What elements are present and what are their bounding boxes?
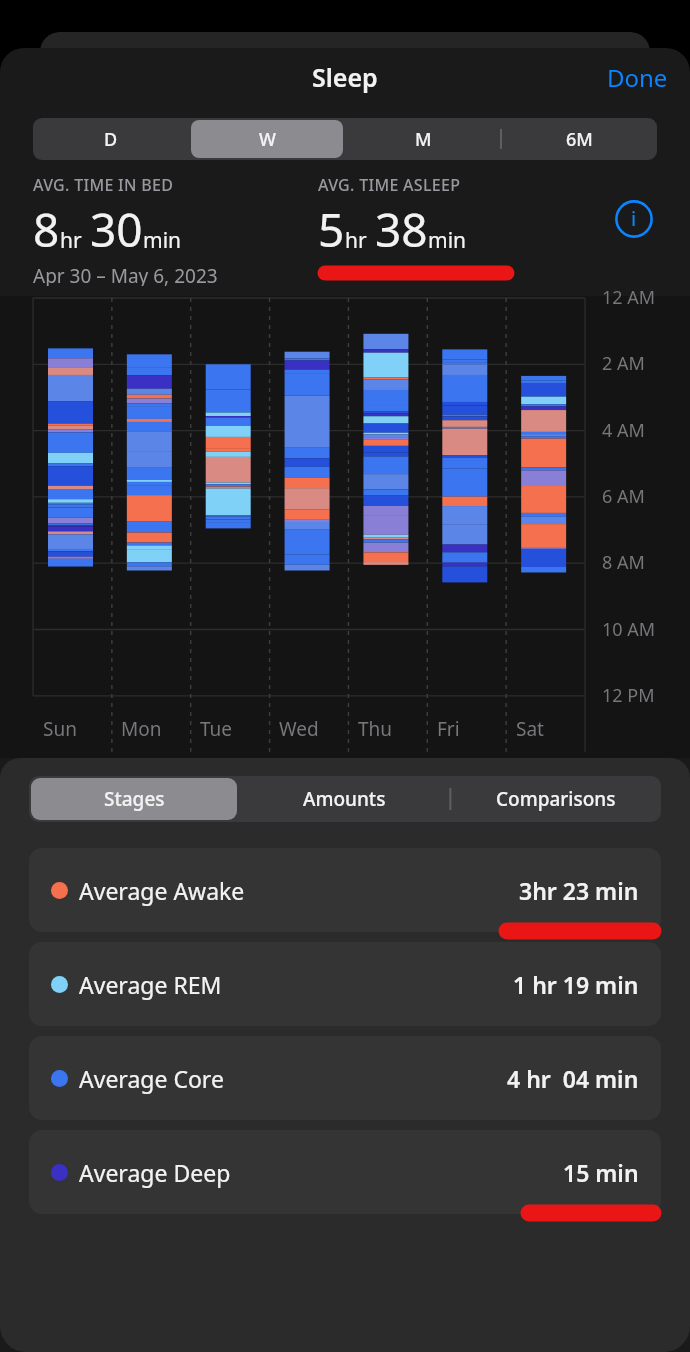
staticText: Stages (104, 786, 165, 812)
staticText: hr (60, 226, 82, 255)
staticText: Amounts (303, 786, 386, 812)
staticText: 4 hr 04 min (507, 1063, 639, 1094)
staticText: Average Core (79, 1063, 224, 1094)
staticText: min (428, 226, 467, 255)
button[interactable]: Average Core (29, 1036, 661, 1120)
button[interactable]: 6M (503, 120, 655, 158)
button[interactable]: W (191, 120, 343, 158)
staticText: 5 (318, 198, 345, 261)
staticText: Fri (437, 716, 460, 742)
staticText: 6M (566, 127, 593, 152)
staticText: D (104, 127, 118, 152)
button[interactable]: Done (585, 49, 690, 106)
staticText: i (631, 206, 637, 232)
staticText: min (143, 226, 182, 255)
button[interactable]: Comparisons (452, 778, 659, 820)
staticText: Thu (358, 716, 393, 742)
staticText: 30 (90, 198, 143, 261)
staticText: Sun (43, 716, 77, 742)
staticText: 12 AM (602, 285, 656, 310)
staticText: 1 hr 19 min (513, 969, 639, 1000)
staticText: Mon (121, 716, 162, 742)
staticText: Sat (516, 716, 544, 742)
button[interactable]: Average REM (29, 942, 661, 1026)
staticText: 10 AM (602, 617, 656, 642)
staticText: Done (607, 61, 668, 94)
staticText: Average Awake (79, 875, 245, 906)
staticText: 6 AM (602, 484, 645, 509)
button[interactable]: Average Deep (29, 1130, 661, 1214)
staticText: Tue (200, 716, 233, 742)
button[interactable]: Information about sleep data (611, 196, 657, 242)
staticText: 2 AM (602, 351, 645, 376)
button[interactable]: Average Awake (29, 848, 661, 932)
staticText: Average REM (79, 969, 222, 1000)
staticText: 8 (33, 198, 60, 261)
staticText: AVG. TIME IN BED (33, 174, 174, 196)
staticText: 12 PM (602, 683, 655, 708)
staticText: Sleep (312, 60, 378, 94)
button[interactable]: D (35, 120, 187, 158)
staticText: Wed (279, 716, 319, 742)
staticText: Average Deep (79, 1157, 231, 1188)
staticText: 8 AM (602, 550, 645, 575)
staticText: AVG. TIME ASLEEP (318, 174, 461, 196)
staticText: Apr 30 – May 6, 2023 (33, 263, 218, 286)
button[interactable]: M (347, 120, 499, 158)
staticText: M (415, 127, 432, 152)
staticText: 15 min (563, 1157, 639, 1188)
button[interactable]: Amounts (241, 778, 448, 820)
button[interactable]: Stages (31, 778, 237, 820)
staticText: 3hr 23 min (519, 875, 639, 906)
staticText: W (259, 127, 276, 152)
staticText: Comparisons (496, 786, 616, 812)
staticText: hr (345, 226, 367, 255)
staticText: 4 AM (602, 418, 645, 443)
staticText: 38 (375, 198, 428, 261)
